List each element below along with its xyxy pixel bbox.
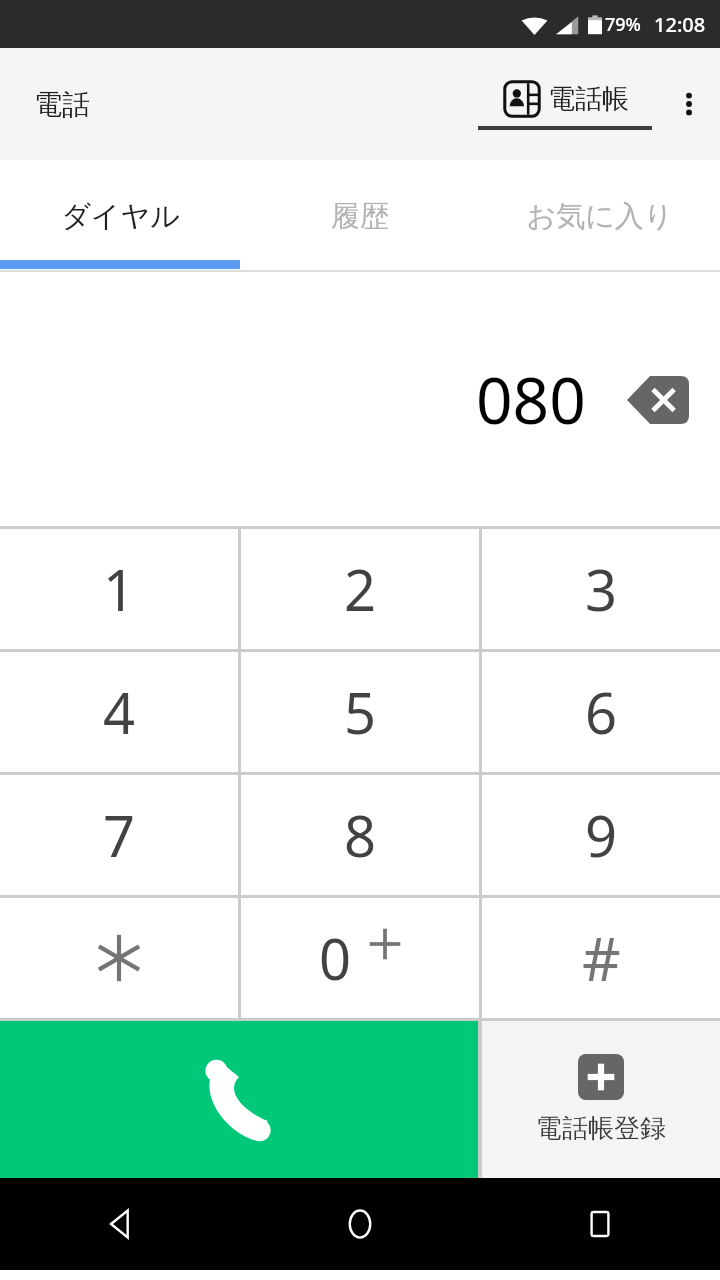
button[interactable]: 電話帳 <box>474 78 656 130</box>
staticText: 4 <box>103 674 136 750</box>
button[interactable]: # <box>482 898 720 1018</box>
button[interactable]: Backspace <box>624 371 692 429</box>
button[interactable]: Home <box>240 1178 480 1270</box>
button[interactable] <box>0 898 238 1018</box>
staticText: 1 <box>103 551 136 627</box>
staticText: 電話帳登録 <box>536 1112 666 1145</box>
button[interactable]: Recents <box>480 1178 720 1270</box>
button[interactable]: 0 <box>241 898 479 1018</box>
button[interactable]: 4 <box>0 652 238 772</box>
button[interactable]: Call <box>0 1021 478 1178</box>
button[interactable]: 9 <box>482 775 720 895</box>
staticText: 7 <box>103 797 136 873</box>
button[interactable]: 6 <box>482 652 720 772</box>
staticText: 5 <box>344 674 377 750</box>
staticText: # <box>582 917 621 999</box>
button[interactable]: 1 <box>0 529 238 649</box>
staticText: 8 <box>344 797 377 873</box>
staticText: 080 <box>476 356 586 443</box>
staticText: 12:08 <box>654 11 706 38</box>
button[interactable]: More options <box>664 79 714 129</box>
button[interactable]: 3 <box>482 529 720 649</box>
staticText: 電話 <box>34 87 90 122</box>
staticText: 79% <box>605 12 641 37</box>
staticText: 9 <box>585 797 618 873</box>
button[interactable]: Back <box>0 1178 240 1270</box>
button[interactable]: 5 <box>241 652 479 772</box>
staticText: ダイヤル <box>61 198 180 235</box>
button[interactable]: 2 <box>241 529 479 649</box>
staticText: お気に入り <box>526 198 674 235</box>
staticText: 電話帳 <box>548 82 629 116</box>
button[interactable]: 電話帳登録 <box>482 1021 720 1178</box>
button[interactable]: 7 <box>0 775 238 895</box>
button[interactable]: 8 <box>241 775 479 895</box>
staticText: 6 <box>585 674 618 750</box>
button[interactable]: お気に入り <box>480 160 720 272</box>
button[interactable]: 履歴 <box>240 160 480 272</box>
button[interactable]: ダイヤル <box>0 160 240 272</box>
staticText: 3 <box>585 551 618 627</box>
staticText: 履歴 <box>331 198 389 235</box>
staticText: 2 <box>344 551 377 627</box>
staticText: 0 <box>319 920 352 996</box>
